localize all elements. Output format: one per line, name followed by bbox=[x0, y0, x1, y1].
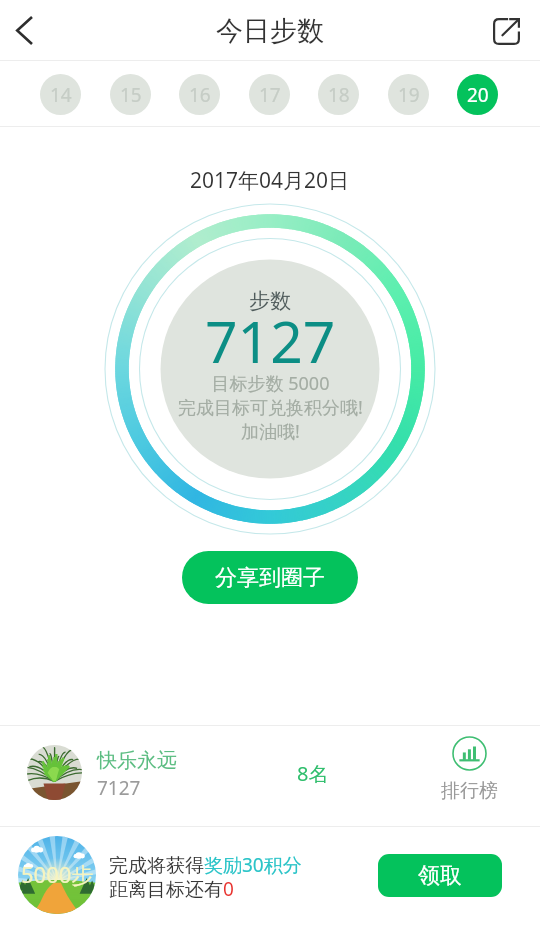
button[interactable]: 20 bbox=[457, 74, 498, 115]
staticText: 完成将获得奖励30积分 bbox=[109, 852, 302, 878]
staticText: 今日步数 bbox=[216, 14, 324, 48]
staticText: 目标步数 5000 完成目标可兑换积分哦! 加油哦! bbox=[178, 371, 363, 443]
button[interactable]: 14 bbox=[40, 74, 81, 115]
staticText: 步数 bbox=[249, 288, 291, 314]
staticText: 18 bbox=[328, 82, 350, 108]
staticText: 7127 bbox=[97, 775, 141, 801]
staticText: 距离目标还有0 bbox=[109, 876, 234, 902]
staticText: 快乐永远 bbox=[97, 748, 177, 773]
staticText: 7127 bbox=[205, 302, 336, 380]
staticText: 17 bbox=[259, 82, 281, 108]
staticText: 14 bbox=[50, 82, 72, 108]
button[interactable]: 16 bbox=[179, 74, 220, 115]
button[interactable]: Back bbox=[0, 5, 52, 57]
staticText: 2017年04月20日 bbox=[190, 166, 350, 195]
staticText: 8名 bbox=[297, 760, 329, 787]
staticText: 19 bbox=[398, 82, 420, 108]
staticText: 排行榜 bbox=[441, 779, 498, 803]
button[interactable]: 15 bbox=[110, 74, 151, 115]
button[interactable]: 快乐永远 bbox=[0, 726, 540, 826]
staticText: 领取 bbox=[418, 862, 462, 890]
staticText: 20 bbox=[467, 82, 489, 108]
button[interactable]: 分享到圈子 bbox=[182, 551, 358, 604]
staticText: 5000步 bbox=[21, 859, 94, 889]
staticText: 15 bbox=[120, 82, 142, 108]
staticText: 分享到圈子 bbox=[215, 564, 325, 592]
button[interactable]: 排行榜 bbox=[436, 736, 503, 803]
button[interactable]: 18 bbox=[318, 74, 359, 115]
button[interactable]: 17 bbox=[249, 74, 290, 115]
button[interactable]: 领取 bbox=[378, 854, 502, 897]
button[interactable]: 19 bbox=[388, 74, 429, 115]
button[interactable]: Share bbox=[480, 5, 532, 57]
staticText: 16 bbox=[189, 82, 211, 108]
